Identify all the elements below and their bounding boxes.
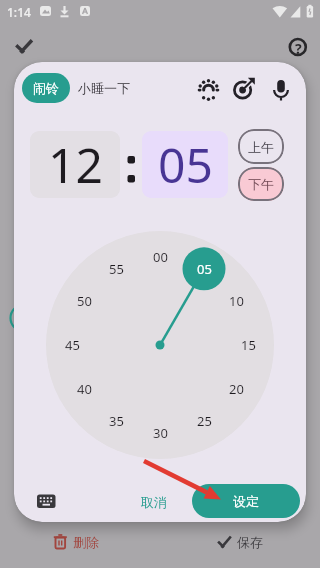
staticText: 05 bbox=[197, 260, 212, 278]
button[interactable]: ? bbox=[0, 0, 16, 16]
button[interactable] bbox=[266, 75, 295, 104]
staticText: 删除 bbox=[73, 534, 99, 550]
button[interactable] bbox=[29, 486, 63, 516]
button[interactable]: 上午 bbox=[238, 129, 284, 164]
button[interactable]: 12 bbox=[30, 131, 120, 198]
button[interactable]: 下午 bbox=[238, 167, 284, 201]
button[interactable]: 小睡一下 bbox=[14, 62, 74, 92]
staticText: 30 bbox=[153, 424, 168, 442]
staticText: 50 bbox=[77, 292, 92, 310]
button[interactable]: 删除 bbox=[0, 0, 40, 17]
staticText: 55 bbox=[109, 260, 124, 278]
staticText: 设定 bbox=[233, 493, 259, 509]
staticText: 12 bbox=[48, 132, 103, 197]
staticText: ? bbox=[295, 39, 302, 55]
staticText: 35 bbox=[109, 412, 124, 430]
button[interactable] bbox=[194, 75, 223, 104]
staticText: 40 bbox=[77, 380, 92, 398]
staticText: 05 bbox=[158, 132, 213, 197]
staticText: 上午 bbox=[248, 139, 274, 155]
staticText: 下午 bbox=[248, 176, 274, 192]
staticText: 保存 bbox=[237, 534, 263, 550]
staticText: 10 bbox=[229, 292, 244, 310]
button[interactable]: 05 bbox=[142, 131, 228, 198]
button[interactable]: 设定 bbox=[192, 484, 300, 518]
staticText: 小睡一下 bbox=[78, 80, 130, 96]
staticText: 45 bbox=[65, 336, 80, 354]
button[interactable]: 取消 bbox=[14, 62, 47, 82]
button[interactable]: 保存 bbox=[0, 0, 40, 17]
staticText: 15 bbox=[241, 336, 256, 354]
staticText: 1:14 bbox=[7, 4, 31, 20]
staticText: 取消 bbox=[141, 494, 167, 510]
staticText: 闹铃 bbox=[33, 80, 59, 96]
staticText: 20 bbox=[229, 380, 244, 398]
staticText: 00 bbox=[153, 248, 168, 266]
button[interactable]: 闹铃 bbox=[22, 73, 70, 103]
button[interactable] bbox=[228, 75, 257, 104]
staticText: 25 bbox=[197, 412, 212, 430]
